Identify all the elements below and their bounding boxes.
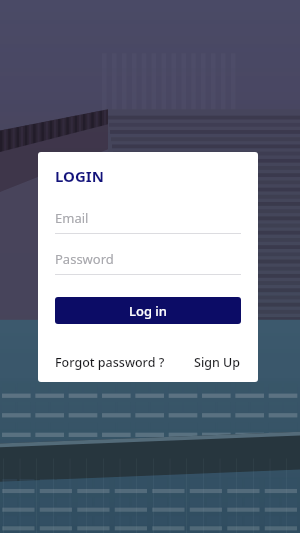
button[interactable]: Log in (55, 297, 241, 324)
staticText: Email (55, 209, 89, 227)
staticText: LOGIN (55, 166, 104, 186)
button[interactable]: Sign Up (194, 354, 241, 371)
staticText: Log in (129, 302, 167, 320)
staticText: Password (55, 250, 114, 268)
button[interactable]: Forgot password ? (55, 354, 165, 371)
staticText: Sign Up (194, 354, 241, 371)
button[interactable]: Email (55, 205, 241, 231)
staticText: Forgot password ? (55, 354, 165, 371)
button[interactable]: Password (55, 246, 241, 272)
